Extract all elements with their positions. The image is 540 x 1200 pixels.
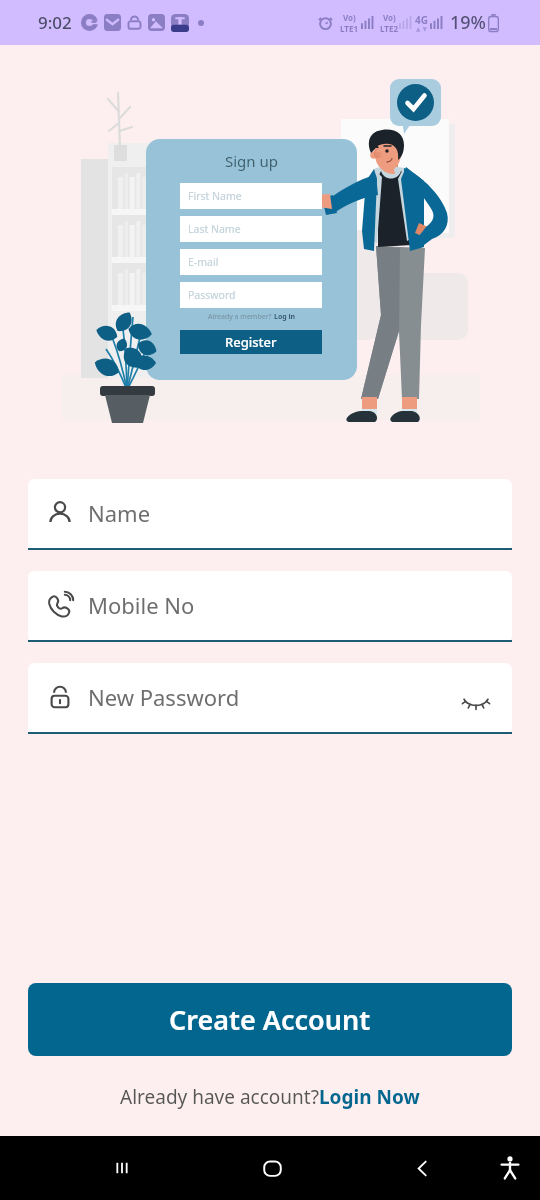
button[interactable]: Login Now	[319, 1084, 420, 1110]
staticText: 4G	[415, 13, 428, 27]
staticText: Register	[225, 333, 277, 351]
staticText: LTE1	[340, 23, 358, 34]
button[interactable]: Accessibility	[480, 1136, 540, 1200]
staticText: 19%	[450, 10, 486, 35]
button[interactable]: New Password	[28, 663, 512, 734]
staticText: Log in	[274, 312, 296, 322]
button[interactable]: Home	[242, 1136, 302, 1200]
staticText: Already have account?	[120, 1084, 319, 1110]
staticText: E-mail	[188, 255, 219, 269]
staticText: First Name	[188, 189, 242, 203]
staticText: Mobile No	[88, 590, 195, 620]
staticText: Sign up	[225, 151, 278, 171]
button[interactable]: Create Account	[28, 983, 512, 1056]
button[interactable]: Mobile No	[28, 571, 512, 642]
button[interactable]: Show password	[454, 675, 498, 719]
staticText: Vo)	[343, 12, 356, 23]
staticText: New Password	[88, 682, 240, 712]
staticText: Password	[188, 288, 236, 302]
button[interactable]: Back	[392, 1136, 452, 1200]
staticText: Last Name	[188, 222, 241, 236]
button[interactable]: Name	[28, 479, 512, 550]
staticText: 9:02	[38, 11, 72, 34]
staticText: Vo)	[383, 12, 396, 23]
staticText: LTE2	[380, 23, 398, 34]
staticText: Already a member?	[208, 312, 274, 322]
staticText: Name	[88, 498, 151, 528]
staticText: Create Account	[169, 1001, 371, 1038]
button[interactable]: Recent apps	[92, 1136, 152, 1200]
